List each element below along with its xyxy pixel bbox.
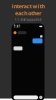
staticText: interact with [11,2,44,10]
staticText: 1:1 chat supported [14,18,41,21]
staticText: each other [15,10,41,17]
staticText: 9:41 [14,25,21,28]
